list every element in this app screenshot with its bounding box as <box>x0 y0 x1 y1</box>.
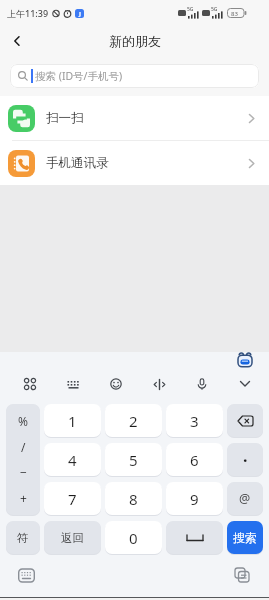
button[interactable]: @ <box>227 482 263 515</box>
button[interactable]: 返回 <box>44 521 101 554</box>
button[interactable] <box>190 372 214 396</box>
button[interactable]: 7 <box>44 482 101 515</box>
staticText: 扫一扫 <box>46 110 84 126</box>
staticText: 返回 <box>61 531 84 545</box>
staticText: % <box>18 413 28 429</box>
button[interactable] <box>227 404 263 437</box>
button[interactable]: % <box>6 404 40 515</box>
button[interactable]: 8 <box>105 482 162 515</box>
staticText: + <box>20 490 27 506</box>
staticText: / <box>21 439 26 455</box>
button[interactable] <box>233 372 257 396</box>
staticText: 5G <box>187 6 194 13</box>
staticText: 符 <box>17 531 29 545</box>
staticText: − <box>20 464 27 480</box>
button[interactable] <box>233 566 251 584</box>
button[interactable]: 符 <box>6 521 40 554</box>
staticText: 4 <box>68 450 77 470</box>
staticText: @ <box>239 490 251 507</box>
button[interactable]: 0 <box>105 521 162 554</box>
staticText: · <box>243 449 248 471</box>
button[interactable]: 手机通讯录 <box>0 141 269 185</box>
staticText: J <box>79 10 81 18</box>
staticText: 0 <box>129 528 138 548</box>
button[interactable]: 2 <box>105 404 162 437</box>
button[interactable] <box>18 372 42 396</box>
button[interactable]: 9 <box>166 482 223 515</box>
button[interactable]: 搜索 (ID号/手机号) <box>10 64 259 88</box>
button[interactable]: 搜索 <box>227 521 263 554</box>
button[interactable] <box>237 352 254 369</box>
staticText: 5G <box>211 6 218 13</box>
staticText: 搜索 (ID号/手机号) <box>35 69 123 83</box>
staticText: 1 <box>68 411 77 431</box>
staticText: 3 <box>190 411 199 431</box>
button[interactable]: 3 <box>166 404 223 437</box>
staticText: 83 <box>231 10 238 18</box>
staticText: 手机通讯录 <box>46 155 109 171</box>
staticText: 新的朋友 <box>109 33 161 49</box>
button[interactable]: 5 <box>105 443 162 476</box>
staticText: 8 <box>129 489 138 509</box>
staticText: 6 <box>190 450 199 470</box>
button[interactable] <box>166 521 223 554</box>
button[interactable] <box>104 372 128 396</box>
button[interactable]: 6 <box>166 443 223 476</box>
button[interactable] <box>61 372 85 396</box>
staticText: 7 <box>68 489 77 509</box>
staticText: 9 <box>190 489 199 509</box>
staticText: 5 <box>129 450 138 470</box>
staticText: 搜索 <box>233 530 257 545</box>
button[interactable]: 1 <box>44 404 101 437</box>
button[interactable]: · <box>227 443 263 476</box>
button[interactable]: 扫一扫 <box>0 96 269 140</box>
button[interactable] <box>17 566 35 584</box>
button[interactable] <box>6 30 28 52</box>
button[interactable]: 4 <box>44 443 101 476</box>
staticText: 上午11:39 <box>7 7 49 19</box>
button[interactable] <box>147 372 171 396</box>
staticText: 2 <box>129 411 138 431</box>
